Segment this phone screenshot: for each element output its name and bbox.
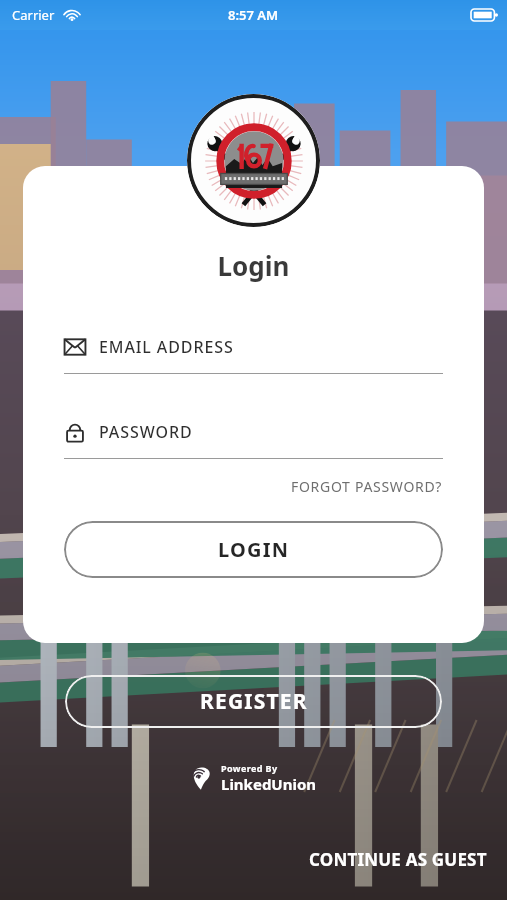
staticText: LinkedUnion: [221, 774, 317, 794]
staticText: 8:57 AM: [228, 6, 279, 24]
button[interactable]: FORGOT PASSWORD?: [291, 475, 443, 498]
staticText: LOGIN: [218, 536, 290, 563]
button[interactable]: CONTINUE AS GUEST: [307, 846, 489, 873]
staticText: REGISTER: [200, 687, 308, 716]
staticText: Powered By: [221, 762, 278, 774]
staticText: Carrier: [12, 6, 55, 24]
button[interactable]: EMAIL ADDRESS: [23, 336, 484, 374]
staticText: EMAIL ADDRESS: [99, 336, 234, 358]
staticText: Login: [23, 248, 484, 283]
button[interactable]: LOGIN: [64, 521, 443, 578]
staticText: PASSWORD: [99, 421, 193, 443]
button[interactable]: REGISTER: [65, 675, 442, 728]
button[interactable]: Powered By: [190, 762, 317, 794]
button[interactable]: PASSWORD: [23, 421, 484, 459]
